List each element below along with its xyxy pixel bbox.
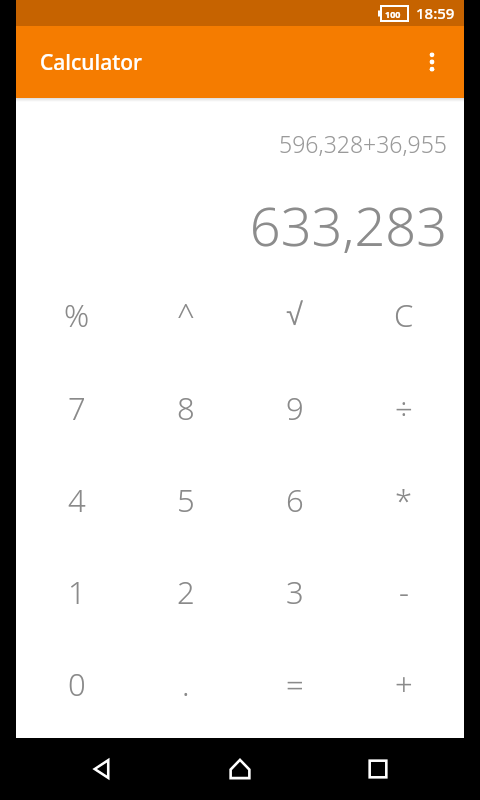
button[interactable]: * (349, 454, 458, 546)
staticText: 9 (286, 387, 304, 429)
staticText: + (395, 663, 413, 705)
staticText: 6 (286, 479, 304, 521)
button[interactable]: ÷ (349, 361, 458, 454)
button[interactable]: 0 (22, 638, 131, 730)
button[interactable]: Back (74, 741, 130, 797)
button[interactable]: 2 (131, 546, 240, 638)
staticText: 7 (68, 387, 86, 429)
staticText: 18:59 (416, 3, 455, 23)
button[interactable]: % (22, 268, 131, 361)
staticText: 5 (177, 479, 195, 521)
staticText: √ (286, 297, 304, 332)
button[interactable]: + (349, 638, 458, 730)
staticText: Calculator (40, 48, 142, 77)
staticText: - (399, 571, 409, 613)
button[interactable]: 3 (240, 546, 349, 638)
staticText: 1 (68, 571, 86, 613)
button[interactable]: 4 (22, 454, 131, 546)
button[interactable]: 7 (22, 361, 131, 454)
staticText: = (286, 663, 304, 705)
button[interactable]: C (349, 268, 458, 361)
staticText: * (395, 479, 413, 521)
staticText: 2 (177, 571, 195, 613)
button[interactable]: Recent apps (350, 741, 406, 797)
staticText: 0 (68, 663, 86, 705)
staticText: 8 (177, 387, 195, 429)
button[interactable]: 6 (240, 454, 349, 546)
staticText: % (64, 294, 90, 336)
button[interactable]: √ (240, 268, 349, 361)
button[interactable]: = (240, 638, 349, 730)
staticText: . (182, 663, 190, 705)
staticText: 633,283 (16, 188, 447, 262)
button[interactable]: More options (408, 38, 456, 86)
staticText: ^ (177, 294, 195, 336)
staticText: 596,328+36,955 (16, 128, 447, 159)
staticText: C (394, 294, 414, 336)
staticText: ÷ (395, 387, 413, 429)
staticText: 4 (68, 479, 86, 521)
staticText: 100 (385, 8, 401, 20)
button[interactable]: Home (212, 741, 268, 797)
button[interactable]: - (349, 546, 458, 638)
button[interactable]: 5 (131, 454, 240, 546)
button[interactable]: ^ (131, 268, 240, 361)
button[interactable]: 1 (22, 546, 131, 638)
staticText: 3 (286, 571, 304, 613)
button[interactable]: 8 (131, 361, 240, 454)
button[interactable]: 9 (240, 361, 349, 454)
